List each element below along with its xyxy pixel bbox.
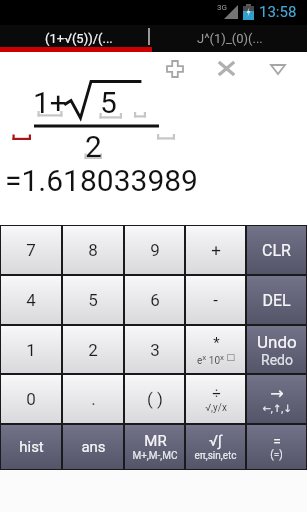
- staticText: 8: [88, 240, 98, 260]
- staticText: .: [91, 389, 96, 409]
- staticText: ans: [81, 438, 106, 456]
- button[interactable]: 9: [125, 226, 184, 274]
- staticText: 1+: [33, 85, 67, 120]
- button[interactable]: DEL: [247, 276, 306, 324]
- button[interactable]: ÷: [186, 375, 245, 423]
- staticText: =: [273, 433, 281, 449]
- button[interactable]: hist: [1, 425, 61, 469]
- button[interactable]: -: [186, 276, 245, 324]
- staticText: ( ): [147, 389, 163, 409]
- button[interactable]: 6: [125, 276, 184, 324]
- staticText: 13:58: [259, 3, 297, 21]
- staticText: 1: [26, 340, 36, 360]
- staticText: 9: [150, 240, 160, 260]
- staticText: Undo: [257, 332, 297, 352]
- staticText: -: [213, 290, 218, 310]
- staticText: MR: [144, 432, 167, 450]
- button[interactable]: 3: [125, 326, 184, 373]
- staticText: 5: [88, 290, 98, 310]
- staticText: √∫: [209, 432, 222, 450]
- button[interactable]: MR: [125, 425, 184, 469]
- button[interactable]: ans: [63, 425, 123, 469]
- staticText: 5: [100, 85, 117, 120]
- button[interactable]: 0: [1, 375, 61, 423]
- staticText: →: [270, 384, 284, 403]
- button[interactable]: 2: [63, 326, 123, 373]
- button[interactable]: J^(1)_(0)(...: [152, 25, 307, 52]
- staticText: ex 10x □: [197, 352, 235, 366]
- button[interactable]: Undo: [247, 326, 306, 373]
- staticText: ←,↑,↓: [262, 403, 292, 415]
- staticText: =1.618033989: [5, 163, 198, 198]
- staticText: *: [213, 334, 220, 352]
- staticText: hist: [19, 438, 44, 456]
- staticText: +: [211, 240, 221, 260]
- staticText: M+,M-,MC: [132, 450, 178, 462]
- staticText: CLR: [262, 241, 291, 260]
- button[interactable]: (1+√(5))/(...: [0, 25, 152, 52]
- button[interactable]: 7: [1, 226, 61, 274]
- staticText: 2: [88, 340, 98, 360]
- button[interactable]: √∫: [186, 425, 245, 469]
- staticText: √,y/x: [205, 402, 227, 414]
- staticText: ÷: [212, 384, 221, 402]
- button[interactable]: CLR: [247, 226, 306, 274]
- staticText: 6: [150, 290, 160, 310]
- button[interactable]: ( ): [125, 375, 184, 423]
- staticText: (=): [270, 449, 283, 461]
- button[interactable]: *: [186, 326, 245, 373]
- button[interactable]: [219, 62, 234, 75]
- button[interactable]: 5: [63, 276, 123, 324]
- button[interactable]: 8: [63, 226, 123, 274]
- staticText: 3: [150, 340, 160, 360]
- staticText: J^(1)_(0)(...: [197, 31, 263, 46]
- button[interactable]: =: [247, 425, 306, 469]
- staticText: eπ,sin,etc: [194, 450, 237, 462]
- staticText: 0: [26, 389, 36, 409]
- button[interactable]: 4: [1, 276, 61, 324]
- staticText: 4: [26, 290, 36, 310]
- button[interactable]: 1: [1, 326, 61, 373]
- button[interactable]: +: [186, 226, 245, 274]
- staticText: DEL: [262, 291, 291, 310]
- staticText: 2: [85, 129, 102, 164]
- button[interactable]: .: [63, 375, 123, 423]
- button[interactable]: [167, 61, 183, 77]
- staticText: 7: [26, 240, 36, 260]
- button[interactable]: →: [247, 375, 306, 423]
- staticText: 3G: [217, 3, 227, 12]
- button[interactable]: [270, 64, 286, 75]
- staticText: (1+√(5))/(...: [45, 31, 113, 46]
- staticText: Redo: [261, 352, 293, 368]
